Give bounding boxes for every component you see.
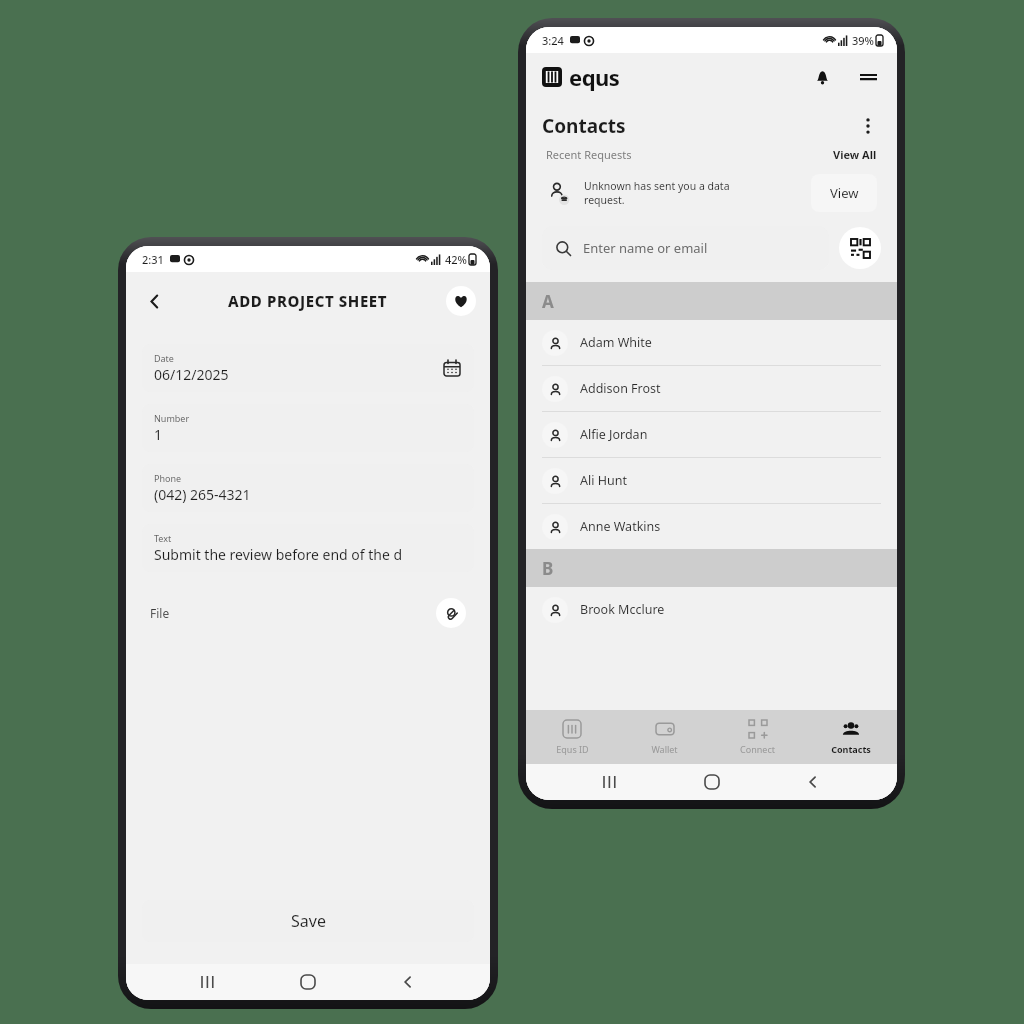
button[interactable]: Text (142, 524, 474, 572)
button[interactable]: Addison Frost (526, 366, 897, 412)
button[interactable]: Contacts (804, 710, 897, 764)
button[interactable]: Home (290, 964, 326, 1000)
button[interactable]: View All (833, 147, 877, 162)
staticText: 42% (445, 252, 467, 267)
button[interactable]: Wallet (618, 710, 711, 764)
button[interactable]: Date (142, 344, 474, 392)
staticText: View All (833, 147, 877, 162)
staticText: Phone (154, 472, 182, 484)
button[interactable]: Notifications (807, 62, 837, 92)
staticText: Submit the review before end of the d (154, 545, 403, 564)
staticText: Connect (740, 743, 775, 755)
staticText: Text (154, 532, 172, 544)
button[interactable]: Alfie Jordan (526, 412, 897, 458)
staticText: 3:24 (542, 33, 564, 48)
button[interactable]: Back (795, 764, 831, 800)
button[interactable]: Adam White (526, 320, 897, 366)
staticText: Unknown has sent you a data (584, 179, 730, 193)
staticText: Equs ID (556, 743, 589, 755)
staticText: Contacts (542, 113, 626, 139)
button[interactable]: Back (390, 964, 426, 1000)
staticText: Brook Mcclure (580, 601, 665, 618)
staticText: (042) 265-4321 (154, 485, 251, 504)
button[interactable]: Scan QR code (839, 227, 881, 269)
staticText: ADD PROJECT SHEET (228, 291, 388, 311)
button[interactable]: Favorite (446, 286, 476, 316)
staticText: Wallet (651, 743, 678, 755)
button[interactable]: Ali Hunt (526, 458, 897, 504)
button[interactable]: Connect (711, 710, 804, 764)
staticText: Alfie Jordan (580, 426, 648, 443)
staticText: equs (569, 62, 620, 92)
staticText: Number (154, 412, 190, 424)
staticText: Anne Watkins (580, 518, 661, 535)
staticText: Ali Hunt (580, 472, 627, 489)
staticText: Addison Frost (580, 380, 661, 397)
button[interactable]: Attach file (436, 598, 466, 628)
staticText: 06/12/2025 (154, 365, 229, 384)
staticText: Recent Requests (546, 147, 632, 162)
staticText: Contacts (831, 743, 871, 755)
button[interactable]: Number (142, 404, 474, 452)
button[interactable]: Recents (592, 764, 628, 800)
button[interactable]: Recents (190, 964, 226, 1000)
button[interactable]: Menu (853, 62, 883, 92)
staticText: B (542, 557, 554, 580)
staticText: 2:31 (142, 252, 164, 267)
button[interactable]: Anne Watkins (526, 504, 897, 549)
staticText: File (150, 605, 170, 621)
staticText: Adam White (580, 334, 652, 351)
button[interactable]: Equs ID (526, 710, 618, 764)
button[interactable]: Phone (142, 464, 474, 512)
staticText: View (830, 184, 859, 202)
button[interactable]: Home (694, 764, 730, 800)
staticText: 39% (852, 33, 874, 48)
button[interactable]: Back (134, 281, 174, 321)
staticText: Save (291, 910, 326, 932)
button[interactable]: More options (855, 113, 881, 139)
staticText: Date (154, 352, 174, 364)
staticText: request. (584, 193, 625, 207)
button[interactable]: Brook Mcclure (526, 587, 897, 632)
button[interactable]: Enter name or email (542, 226, 829, 270)
staticText: A (542, 290, 554, 313)
staticText: 1 (154, 425, 163, 444)
button[interactable]: View (811, 174, 877, 212)
staticText: Enter name or email (583, 239, 708, 257)
button[interactable]: Save (142, 900, 474, 942)
